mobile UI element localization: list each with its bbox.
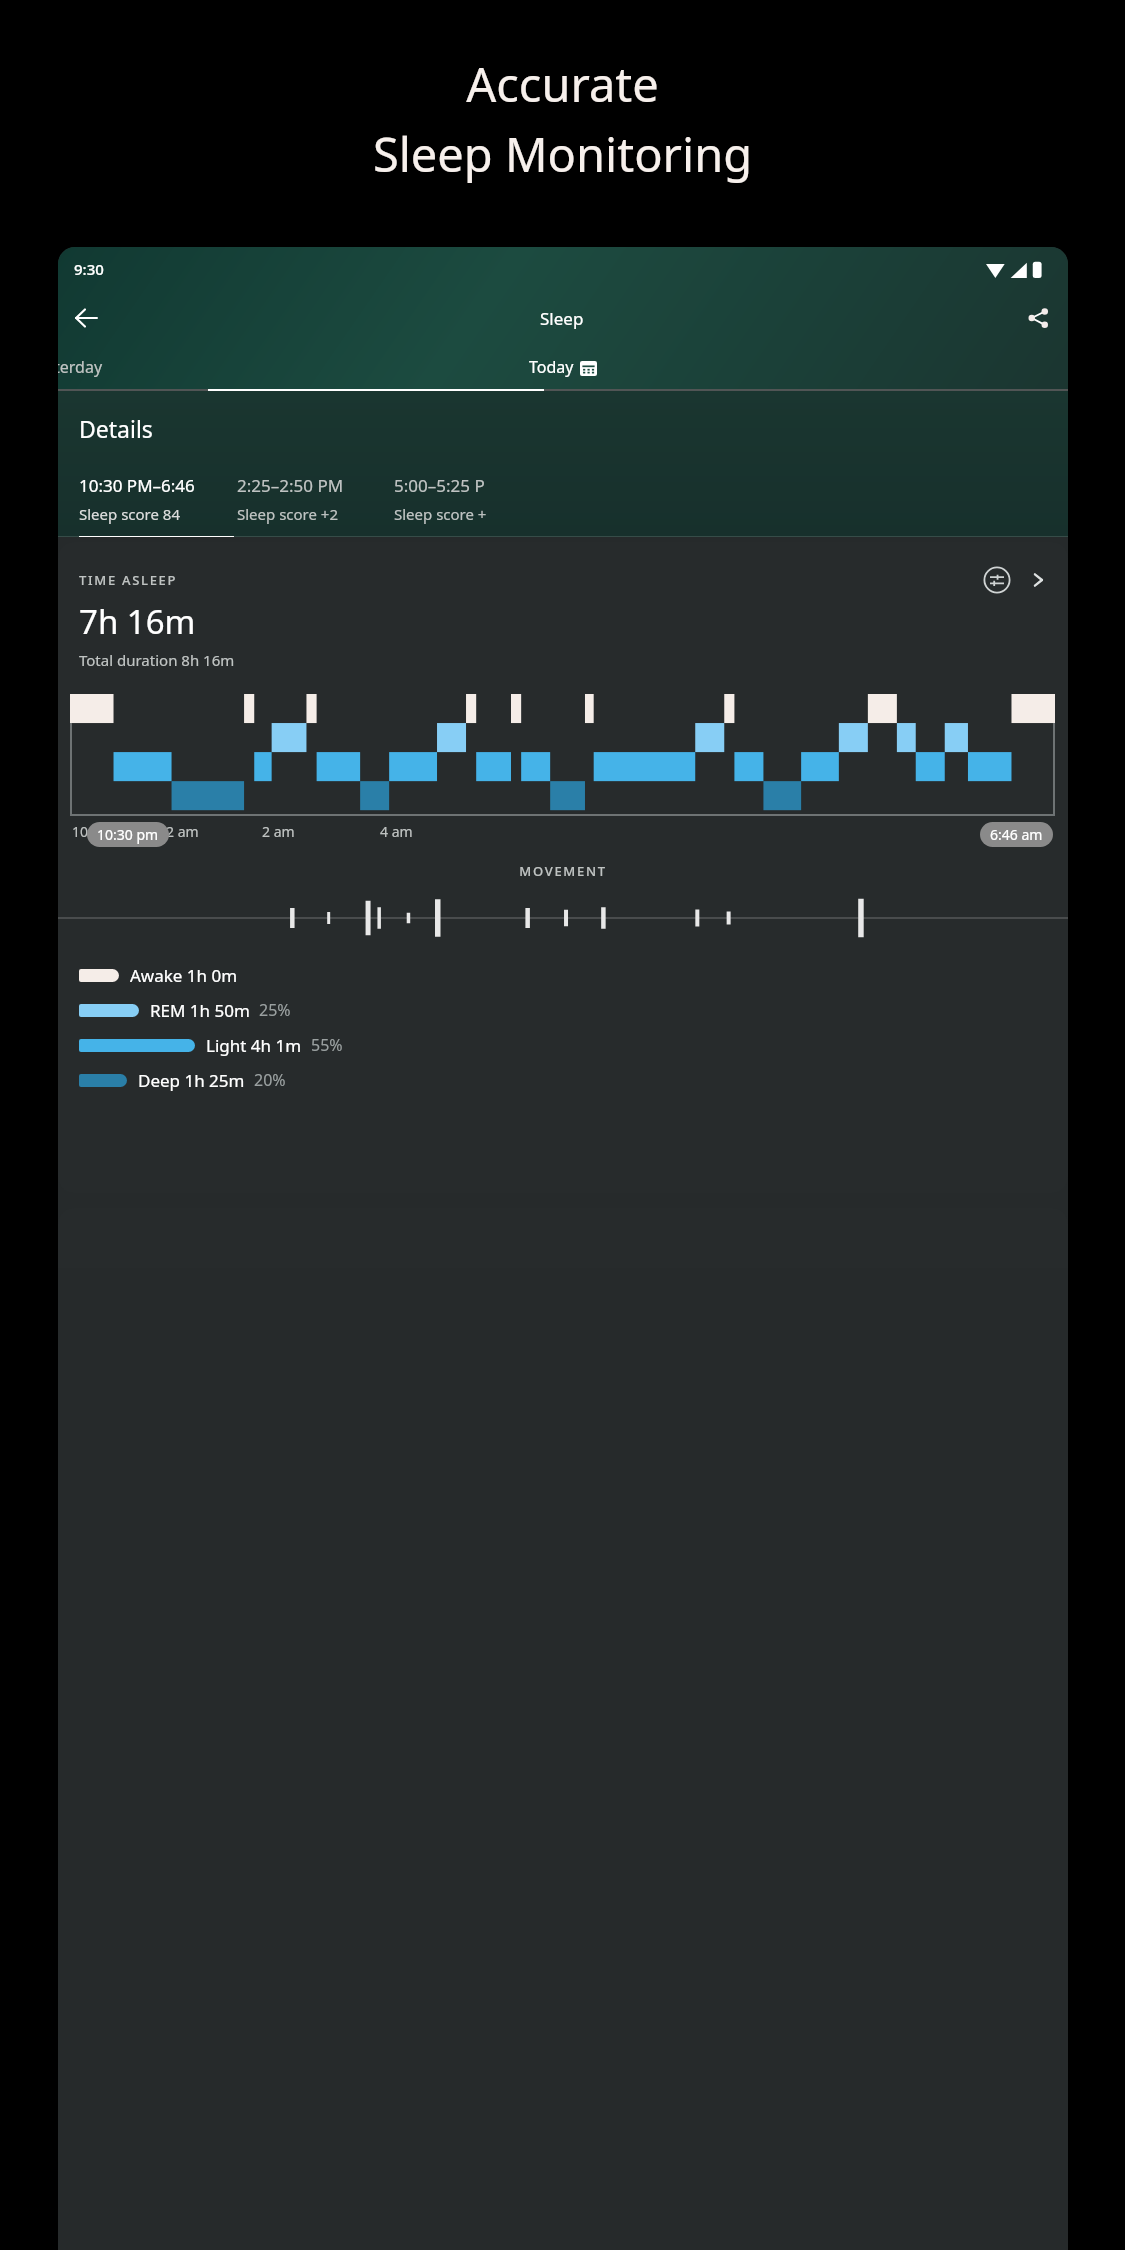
staticText: 9:30: [74, 259, 104, 279]
staticText: Light 4h 1m: [206, 1034, 302, 1056]
staticText: Accurate: [0, 52, 1125, 116]
staticText: Deep 1h 25m: [138, 1069, 245, 1091]
staticText: 6:46 am: [990, 825, 1043, 844]
staticText: 12 am: [158, 822, 262, 841]
staticText: Sleep score +2: [237, 504, 339, 524]
staticText: 25%: [259, 999, 291, 1021]
staticText: 2 am: [262, 822, 380, 841]
staticText: Awake 1h 0m: [130, 964, 238, 986]
staticText: Details: [79, 413, 153, 444]
button[interactable]: Details: [1025, 567, 1051, 593]
staticText: Sleep score +: [394, 504, 487, 524]
staticText: MOVEMENT: [58, 862, 1068, 880]
staticText: Sleep: [540, 307, 584, 330]
staticText: 7h 16m: [79, 599, 196, 644]
staticText: 5:00–5:25 P: [394, 474, 485, 497]
button[interactable]: terday: [58, 345, 394, 389]
staticText: 2:25–2:50 PM: [237, 474, 344, 497]
staticText: 10:30 pm: [97, 825, 159, 844]
staticText: Sleep Monitoring: [0, 122, 1125, 186]
staticText: 10 pm: [72, 822, 158, 841]
button[interactable]: Today: [394, 345, 731, 389]
staticText: Today: [529, 356, 574, 378]
staticText: 55%: [311, 1034, 343, 1056]
staticText: 4 am: [380, 822, 490, 841]
staticText: REM 1h 50m: [150, 999, 250, 1021]
button[interactable]: Back: [64, 296, 108, 340]
staticText: Total duration 8h 16m: [79, 650, 235, 670]
staticText: terday: [58, 356, 103, 378]
staticText: TIME ASLEEP: [79, 571, 178, 589]
button[interactable]: TIME ASLEEP: [58, 542, 1068, 1193]
staticText: Sleep score 84: [79, 504, 181, 524]
button[interactable]: Share: [1016, 296, 1060, 340]
button[interactable]: Adjust: [981, 564, 1013, 596]
staticText: 10:30 PM–6:46 AM: [79, 474, 215, 497]
staticText: 20%: [254, 1069, 286, 1091]
